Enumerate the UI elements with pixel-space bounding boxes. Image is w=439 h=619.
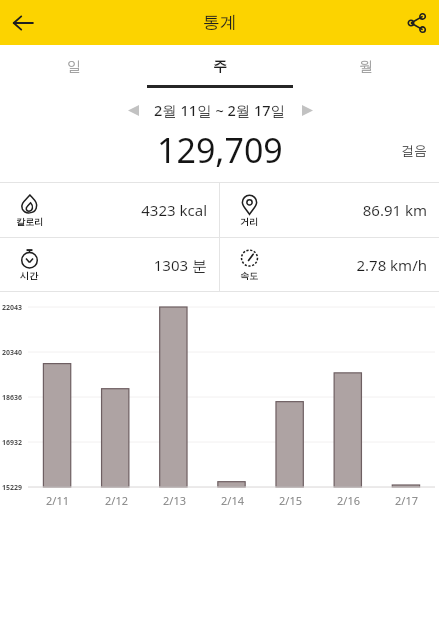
staticText: 2/13 [163,493,186,508]
button[interactable]: Previous week [118,95,148,125]
staticText: 걸음 [401,142,427,158]
button[interactable]: 속도 [220,238,439,291]
button[interactable]: 시간 [0,238,219,291]
button[interactable]: Back [0,0,45,45]
staticText: 속도 [240,270,258,281]
button[interactable]: 월 [293,45,439,88]
button[interactable]: 칼로리 [0,183,219,237]
staticText: 86.91 km [266,200,427,220]
button[interactable]: Next week [292,95,322,125]
staticText: 시간 [20,270,38,281]
staticText: 2/15 [279,493,302,508]
staticText: 칼로리 [16,216,43,227]
button[interactable]: 일 [0,45,147,88]
staticText: 2/12 [105,493,128,508]
staticText: 2/14 [221,493,244,508]
staticText: 2.78 km/h [266,255,427,275]
staticText: 통계 [203,12,237,33]
staticText: 주 [213,58,227,76]
staticText: 2/16 [337,493,360,508]
button[interactable]: 거리 [220,183,439,237]
staticText: 거리 [240,216,258,227]
staticText: 16932 [2,438,29,448]
staticText: 2/11 [46,493,69,508]
staticText: 1303 분 [46,255,207,275]
staticText: 일 [67,58,81,76]
staticText: 20340 [2,348,29,358]
staticText: 15229 [2,483,29,493]
staticText: 18636 [2,393,29,403]
staticText: 2/17 [395,493,418,508]
staticText: 월 [359,58,373,76]
staticText: 129,709 [157,127,283,173]
staticText: 2월 11일 ~ 2월 17일 [154,100,286,120]
staticText: 4323 kcal [46,200,207,220]
staticText: 22043 [2,303,29,313]
button[interactable]: 주 [147,45,293,88]
button[interactable]: Share [394,0,439,45]
